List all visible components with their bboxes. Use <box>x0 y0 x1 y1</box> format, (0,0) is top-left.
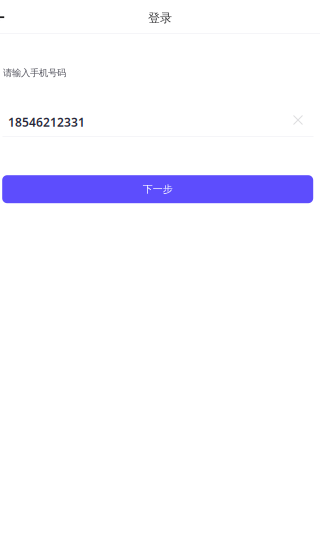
staticText: 请输入手机号码 <box>3 67 66 79</box>
button[interactable]: 请输入手机号码 <box>2 68 313 137</box>
button[interactable]: Clear text <box>286 108 310 132</box>
staticText: 18546212331 <box>8 114 85 130</box>
button[interactable]: 下一步 <box>2 175 313 203</box>
staticText: 下一步 <box>143 183 173 195</box>
button[interactable]: Back <box>0 4 22 30</box>
staticText: 登录 <box>148 10 172 25</box>
